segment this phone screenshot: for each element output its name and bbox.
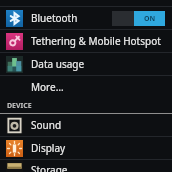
staticText: More… xyxy=(31,80,64,94)
button[interactable]: Display xyxy=(0,137,172,159)
staticText: ON xyxy=(144,14,156,24)
staticText: Sound xyxy=(31,118,62,132)
staticText: Storage xyxy=(31,163,68,172)
button[interactable]: Tethering & Mobile Hotspot xyxy=(0,30,172,52)
staticText: Tethering & Mobile Hotspot xyxy=(31,34,161,48)
button[interactable]: ON xyxy=(112,11,165,26)
staticText: Display xyxy=(31,141,66,155)
button[interactable]: Data usage xyxy=(0,53,172,75)
button[interactable]: Storage xyxy=(0,160,172,172)
staticText: Data usage xyxy=(31,57,85,71)
button[interactable]: Sound xyxy=(0,114,172,136)
button[interactable]: Bluetooth xyxy=(0,7,172,29)
staticText: Bluetooth xyxy=(31,11,78,25)
staticText: DEVICE xyxy=(7,101,32,111)
button[interactable]: More… xyxy=(0,76,172,98)
